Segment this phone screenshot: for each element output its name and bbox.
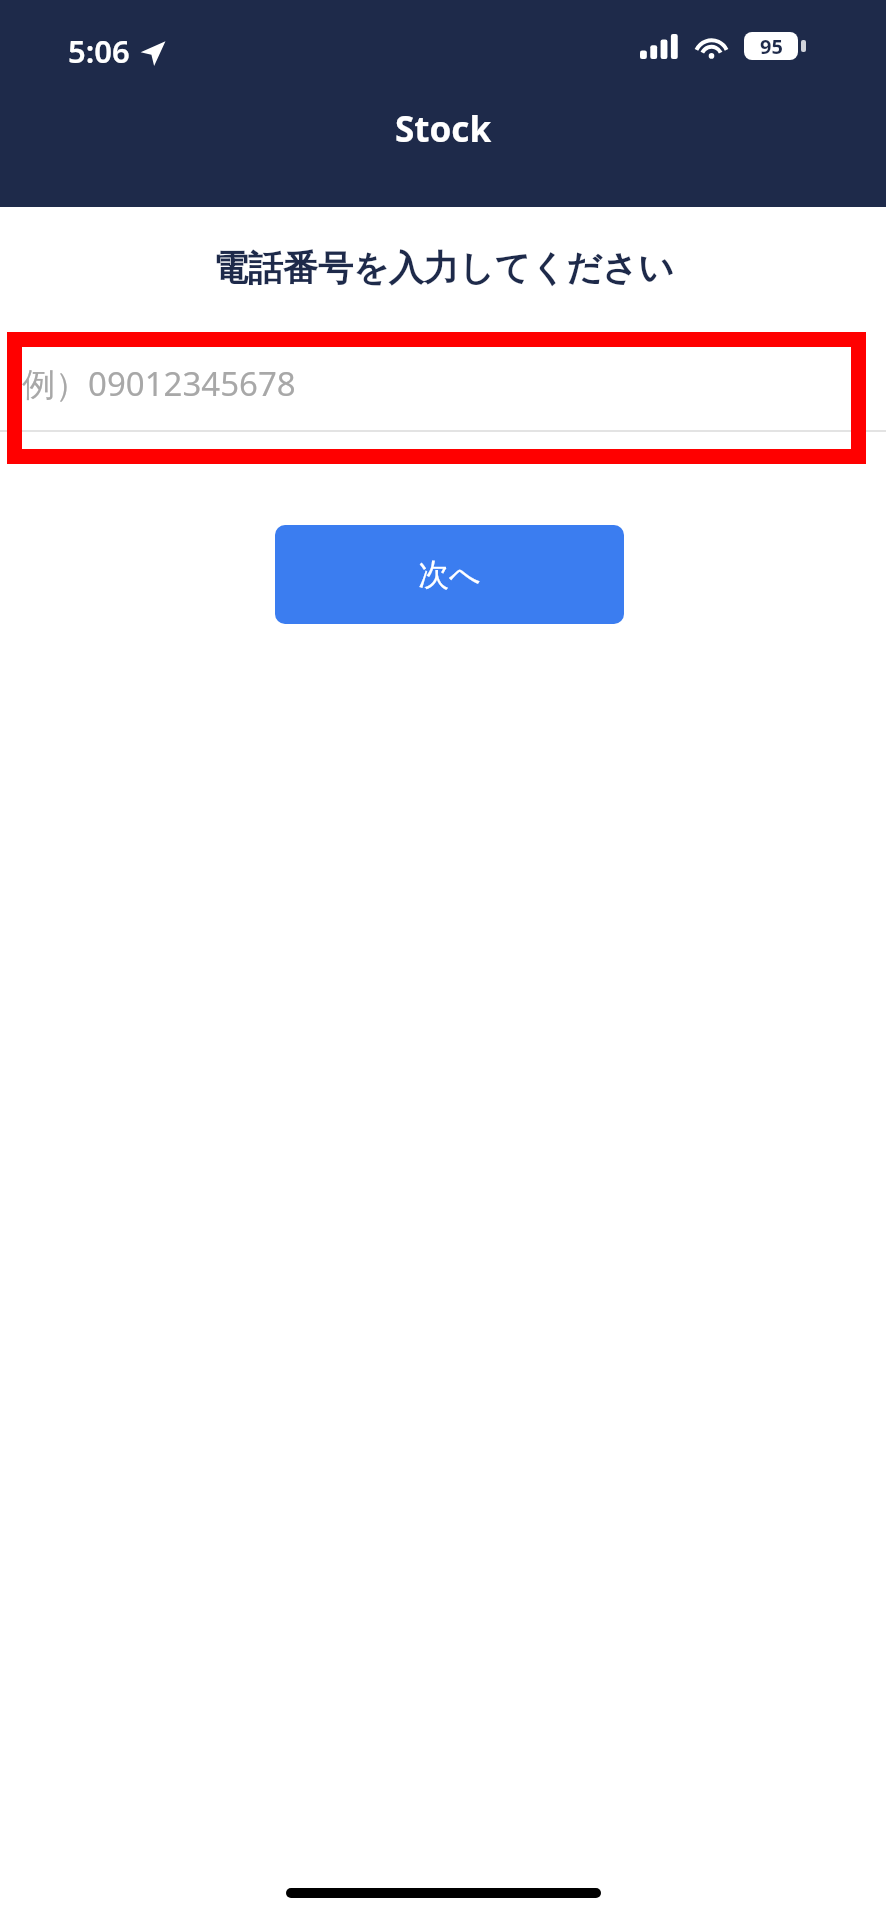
button[interactable]: 次へ bbox=[275, 525, 624, 624]
staticText: 95 bbox=[760, 33, 783, 60]
staticText: 例）09012345678 bbox=[22, 361, 296, 406]
staticText: Stock bbox=[395, 105, 492, 153]
staticText: 次へ bbox=[418, 555, 481, 594]
button[interactable]: 例）09012345678 bbox=[22, 348, 864, 448]
staticText: 5:06 bbox=[68, 30, 130, 72]
staticText: 電話番号を入力してください bbox=[213, 246, 674, 290]
other: Home indicator bbox=[286, 1888, 601, 1898]
